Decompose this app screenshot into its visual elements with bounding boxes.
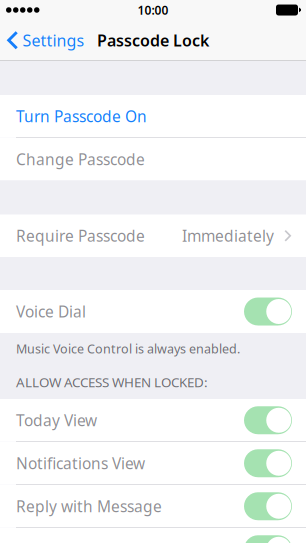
button[interactable]: Voice Dial [244,297,292,325]
staticText: Passcode Lock [97,30,209,51]
button[interactable]: Require Passcode [0,214,306,257]
staticText: Settings [22,30,84,51]
staticText: ALLOW ACCESS WHEN LOCKED: [16,373,208,391]
staticText: Voice Dial [16,301,86,322]
staticText: Require Passcode [16,225,145,246]
staticText: 10:00 [137,2,168,18]
button[interactable]: Turn Passcode On [0,95,306,137]
staticText: Immediately [182,225,274,246]
button[interactable]: Passbook [244,535,292,543]
button[interactable]: Settings [0,20,90,60]
button[interactable]: Reply with Message [244,492,292,520]
staticText: Today View [16,410,97,431]
staticText: Reply with Message [16,496,162,517]
staticText: Music Voice Control is always enabled. [16,340,240,357]
staticText: Notifications View [16,453,145,474]
button[interactable]: Change Passcode [0,138,306,180]
button[interactable]: Notifications View [244,449,292,477]
button[interactable]: Today View [244,406,292,434]
staticText: Change Passcode [16,149,145,170]
staticText: Turn Passcode On [16,106,147,127]
